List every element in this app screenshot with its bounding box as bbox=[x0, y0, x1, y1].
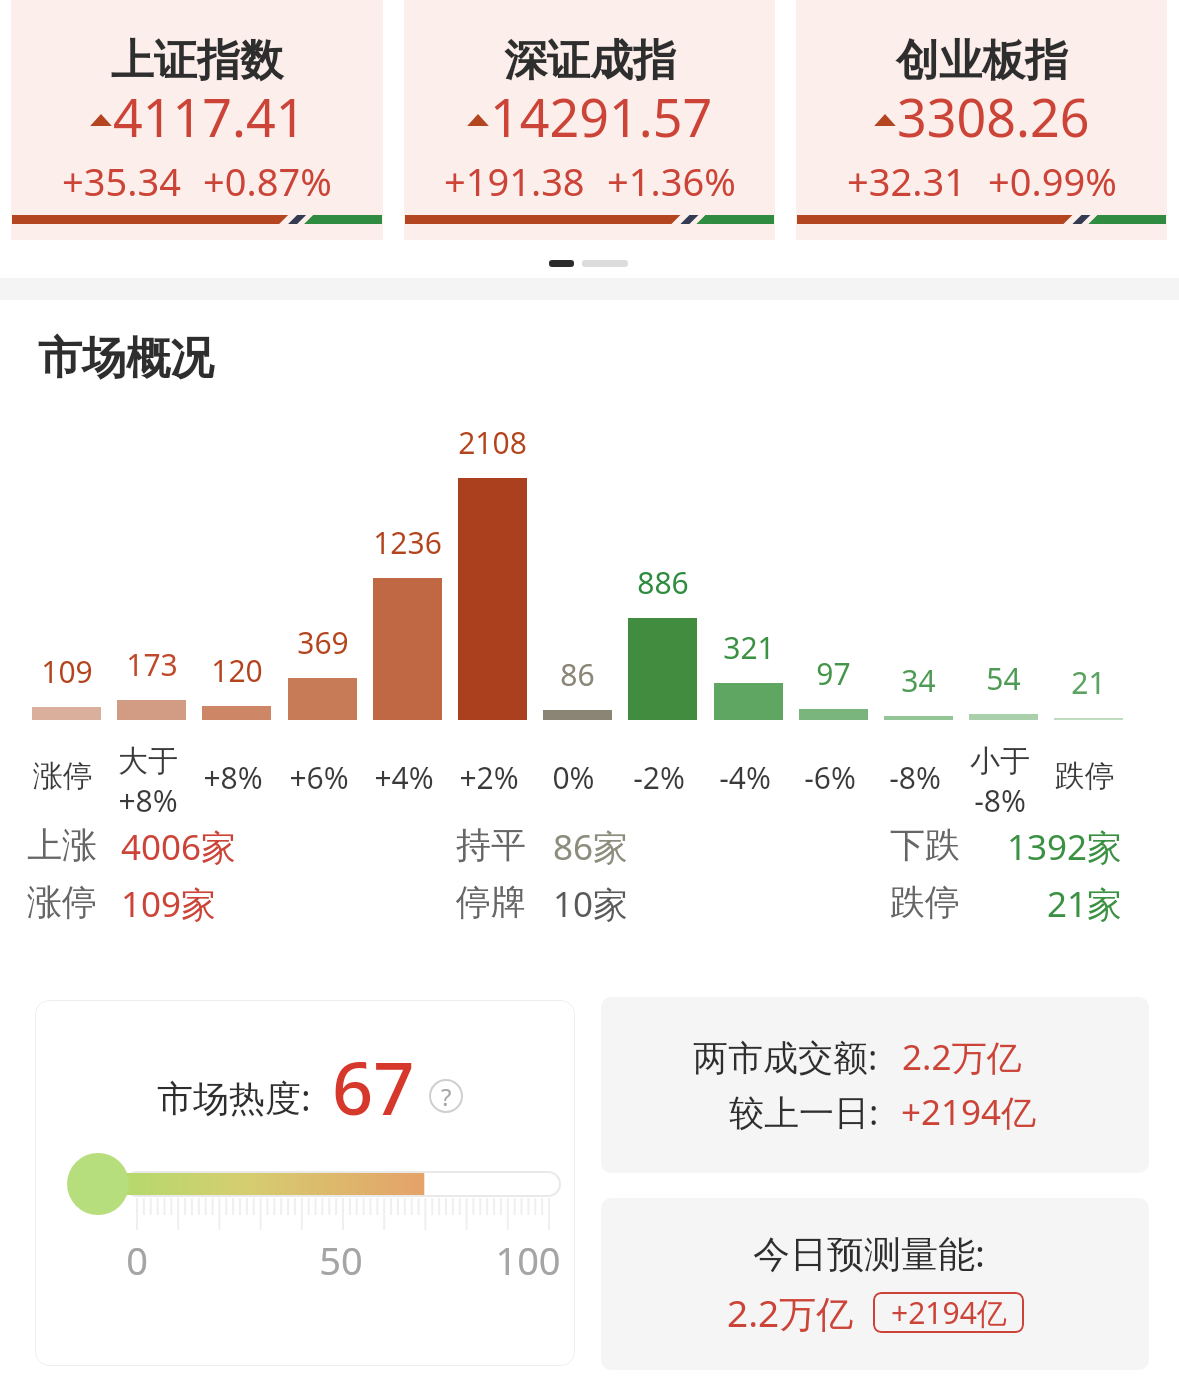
staticText: 886 bbox=[637, 562, 689, 603]
staticText: 173 bbox=[126, 644, 178, 685]
staticText: 109 bbox=[41, 651, 93, 692]
staticText: +1.36% bbox=[607, 155, 736, 207]
staticText: 50 bbox=[319, 1234, 363, 1286]
staticText: +191.38 bbox=[444, 155, 585, 207]
staticText: 小于 bbox=[970, 742, 1030, 780]
staticText: 1236 bbox=[373, 522, 442, 563]
staticText: +2% bbox=[459, 757, 519, 798]
staticText: 4006家 bbox=[121, 823, 237, 871]
staticText: 2.2万亿 bbox=[902, 1033, 1022, 1081]
staticText: 跌停 bbox=[890, 880, 960, 924]
staticText: 67 bbox=[332, 1038, 415, 1136]
button[interactable]: 上证指数 bbox=[11, 0, 383, 240]
staticText: 4117.41 bbox=[113, 81, 306, 152]
staticText: +32.31 bbox=[847, 155, 966, 207]
staticText: 120 bbox=[211, 650, 263, 691]
staticText: +0.99% bbox=[988, 155, 1117, 207]
staticText: 大于 bbox=[118, 742, 178, 780]
staticText: 21家 bbox=[940, 880, 1122, 928]
staticText: +4% bbox=[374, 757, 434, 798]
staticText: 较上一日: bbox=[729, 1088, 879, 1136]
staticText: 86家 bbox=[553, 823, 629, 871]
staticText: +8% bbox=[203, 757, 263, 798]
staticText: -4% bbox=[719, 757, 771, 798]
staticText: ? bbox=[441, 1080, 452, 1113]
button[interactable]: +2194亿 bbox=[873, 1292, 1024, 1333]
staticText: 深证成指 bbox=[504, 34, 676, 88]
staticText: -8% bbox=[889, 757, 941, 798]
staticText: 100 bbox=[495, 1234, 561, 1286]
staticText: 两市成交额: bbox=[693, 1033, 878, 1081]
staticText: 54 bbox=[986, 658, 1021, 699]
staticText: -2% bbox=[633, 757, 685, 798]
staticText: 86 bbox=[560, 654, 595, 695]
staticText: 2108 bbox=[458, 422, 527, 463]
staticText: 市场热度: bbox=[157, 1073, 311, 1122]
staticText: +2194亿 bbox=[901, 1088, 1037, 1136]
button[interactable]: 市场热度: bbox=[35, 1000, 575, 1366]
staticText: 3308.26 bbox=[897, 81, 1090, 152]
staticText: 市场概况 bbox=[38, 331, 214, 386]
staticText: 跌停 bbox=[1055, 757, 1115, 795]
staticText: +2194亿 bbox=[891, 1292, 1007, 1333]
staticText: 上证指数 bbox=[111, 34, 283, 88]
staticText: 0% bbox=[552, 757, 595, 798]
button[interactable]: 今日预测量能: bbox=[601, 1198, 1149, 1370]
staticText: -8% bbox=[974, 780, 1026, 821]
staticText: 34 bbox=[901, 660, 936, 701]
staticText: 14291.57 bbox=[490, 81, 713, 152]
staticText: 97 bbox=[816, 653, 851, 694]
staticText: 持平 bbox=[456, 823, 526, 867]
staticText: 0 bbox=[126, 1234, 148, 1286]
staticText: 上涨 bbox=[27, 823, 97, 867]
staticText: 1392家 bbox=[940, 823, 1122, 871]
button[interactable]: 两市成交额: bbox=[601, 997, 1149, 1173]
staticText: 涨停 bbox=[27, 880, 97, 924]
button[interactable]: 深证成指 bbox=[404, 0, 775, 240]
staticText: -6% bbox=[804, 757, 856, 798]
staticText: 涨停 bbox=[33, 757, 93, 795]
staticText: 停牌 bbox=[456, 880, 526, 924]
staticText: +8% bbox=[118, 780, 178, 821]
staticText: 下跌 bbox=[890, 823, 960, 867]
staticText: 109家 bbox=[121, 880, 217, 928]
staticText: +0.87% bbox=[203, 155, 332, 207]
staticText: 2.2万亿 bbox=[727, 1287, 854, 1338]
button[interactable]: Help bbox=[429, 1079, 463, 1113]
staticText: +6% bbox=[289, 757, 349, 798]
staticText: +35.34 bbox=[62, 155, 181, 207]
button[interactable]: 创业板指 bbox=[796, 0, 1167, 240]
staticText: 今日预测量能: bbox=[753, 1227, 985, 1278]
staticText: 369 bbox=[297, 622, 349, 663]
staticText: 21 bbox=[1071, 662, 1106, 703]
staticText: 10家 bbox=[553, 880, 629, 928]
staticText: 创业板指 bbox=[896, 34, 1068, 88]
staticText: 321 bbox=[723, 627, 775, 668]
